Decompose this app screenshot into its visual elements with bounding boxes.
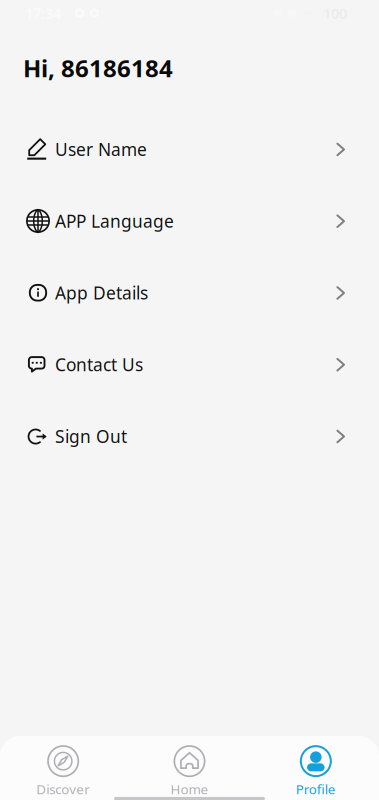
button[interactable]: Home bbox=[126, 734, 253, 800]
staticText: Hi, 86186184 bbox=[23, 52, 173, 84]
staticText: User Name bbox=[55, 138, 147, 161]
button[interactable]: Discover bbox=[0, 734, 126, 800]
button[interactable]: App Details bbox=[0, 257, 379, 329]
staticText: Profile bbox=[296, 780, 336, 798]
staticText: Contact Us bbox=[55, 353, 143, 376]
staticText: Discover bbox=[36, 780, 90, 798]
staticText: 100 bbox=[323, 3, 347, 23]
button[interactable]: User Name bbox=[0, 113, 379, 185]
staticText: Home bbox=[170, 780, 208, 798]
button[interactable]: APP Language bbox=[0, 185, 379, 257]
button[interactable]: Sign Out bbox=[0, 400, 379, 472]
button[interactable]: Contact Us bbox=[0, 329, 379, 400]
staticText: App Details bbox=[55, 281, 148, 304]
staticText: Sign Out bbox=[55, 425, 127, 448]
button[interactable]: Profile bbox=[253, 734, 379, 800]
staticText: APP Language bbox=[55, 209, 174, 232]
